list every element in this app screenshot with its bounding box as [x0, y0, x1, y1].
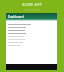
button[interactable] [8, 35, 55, 38]
button[interactable] [8, 23, 55, 26]
button[interactable]: Dashboard [6, 13, 57, 19]
button[interactable] [8, 44, 55, 47]
button[interactable]: ACME APP [0, 0, 64, 13]
staticText: ACME APP [22, 2, 42, 7]
staticText: Dashboard [8, 15, 24, 19]
button[interactable] [8, 26, 55, 29]
staticText: get started [24, 8, 40, 12]
button[interactable] [8, 29, 55, 32]
button[interactable] [8, 41, 55, 44]
button[interactable] [8, 38, 55, 41]
button[interactable] [8, 32, 55, 35]
